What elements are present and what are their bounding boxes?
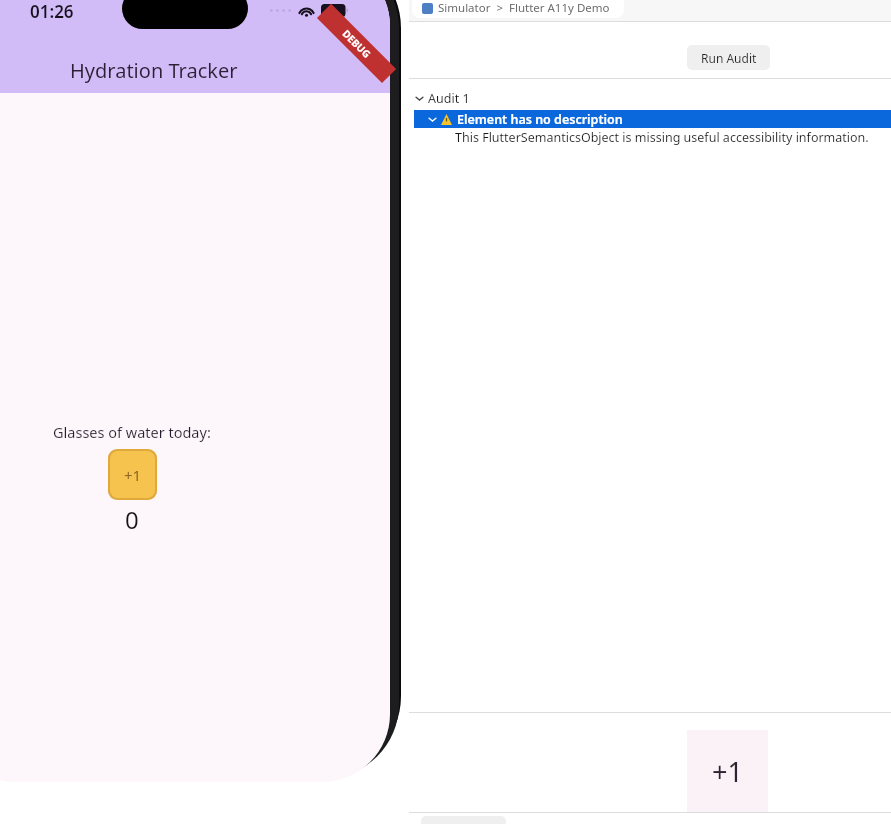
button[interactable]: Add one glass of water [110,451,155,498]
staticText: Element has no description [457,111,623,128]
staticText: Simulator > Flutter A11y Demo [438,0,610,16]
button[interactable]: Element has no description [414,110,891,128]
staticText: This FlutterSemanticsObject is missing u… [455,129,869,146]
staticText: 0 [125,503,139,536]
button[interactable]: Run Audit [687,45,770,70]
staticText: +1 [124,465,142,485]
staticText: Hydration Tracker [70,57,238,84]
staticText: 01:26 [30,0,74,22]
staticText: DEBUG [340,26,374,61]
button[interactable]: Audit 1 [415,90,615,107]
button[interactable]: Simulator > Flutter A11y Demo [412,0,624,18]
staticText: Run Audit [701,50,757,66]
staticText: Audit 1 [428,90,470,107]
staticText: Glasses of water today: [53,422,211,442]
staticText: +1 [712,753,743,790]
